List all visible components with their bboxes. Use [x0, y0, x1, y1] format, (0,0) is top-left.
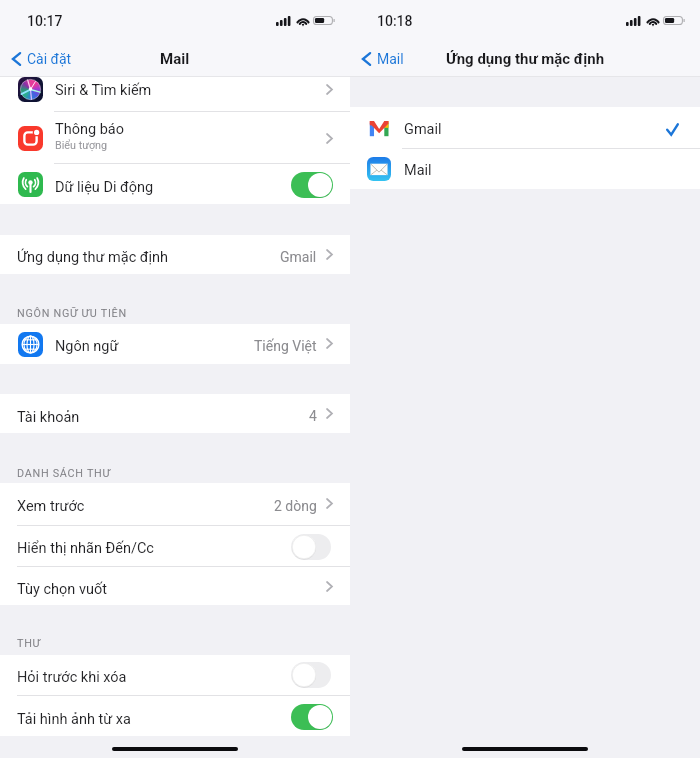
staticText: Biểu tượng: [55, 139, 108, 152]
button[interactable]: Siri & Tìm kiếm: [0, 77, 350, 111]
staticText: Thông báo: [55, 121, 124, 138]
staticText: THƯ: [17, 637, 41, 650]
staticText: Tiếng Việt: [254, 338, 317, 354]
button[interactable]: Xem trước: [0, 483, 350, 525]
staticText: Gmail: [280, 249, 317, 265]
button[interactable]: Tải hình ảnh từ xa: [0, 696, 350, 736]
staticText: Mail: [404, 162, 432, 179]
staticText: Tải hình ảnh từ xa: [17, 711, 131, 728]
button[interactable]: Tài khoản: [0, 394, 350, 433]
staticText: Tùy chọn vuốt: [17, 581, 107, 598]
staticText: Siri & Tìm kiếm: [55, 82, 152, 99]
staticText: Hiển thị nhãn Đến/Cc: [17, 540, 154, 557]
button[interactable]: Mail: [350, 149, 700, 189]
staticText: Ngôn ngữ: [55, 338, 119, 355]
staticText: Mail: [377, 51, 404, 67]
staticText: 10:17: [27, 13, 63, 29]
staticText: 10:18: [377, 13, 413, 29]
staticText: Cài đặt: [27, 51, 72, 67]
staticText: 2 dòng: [274, 498, 317, 514]
button[interactable]: Cài đặt: [9, 40, 75, 77]
button[interactable]: Tùy chọn vuốt: [0, 567, 350, 605]
staticText: DANH SÁCH THƯ: [17, 467, 111, 480]
button[interactable]: Ứng dụng thư mặc định: [0, 235, 350, 274]
staticText: Ứng dụng thư mặc định: [446, 50, 605, 68]
staticText: Xem trước: [17, 498, 85, 515]
button[interactable]: Thông báo: [0, 112, 350, 163]
button[interactable]: Tắt: [291, 662, 331, 688]
other: Đã chọn: [666, 123, 679, 136]
button[interactable]: Bật: [291, 704, 333, 730]
staticText: Tài khoản: [17, 409, 80, 426]
staticText: Hỏi trước khi xóa: [17, 669, 127, 686]
button[interactable]: Hiển thị nhãn Đến/Cc: [0, 526, 350, 566]
button[interactable]: Tắt: [291, 534, 331, 560]
staticText: NGÔN NGỮ ƯU TIÊN: [17, 307, 127, 320]
button[interactable]: Dữ liệu Di động: [0, 164, 350, 204]
button[interactable]: Bật: [291, 172, 333, 198]
button[interactable]: Ngôn ngữ: [0, 324, 350, 364]
button[interactable]: Hỏi trước khi xóa: [0, 655, 350, 695]
staticText: Dữ liệu Di động: [55, 179, 154, 196]
staticText: Mail: [160, 50, 190, 68]
staticText: Ứng dụng thư mặc định: [17, 249, 169, 266]
staticText: Gmail: [404, 121, 442, 138]
button[interactable]: Gmail: [350, 107, 700, 148]
button[interactable]: Mail: [359, 40, 407, 77]
staticText: 4: [309, 408, 317, 424]
